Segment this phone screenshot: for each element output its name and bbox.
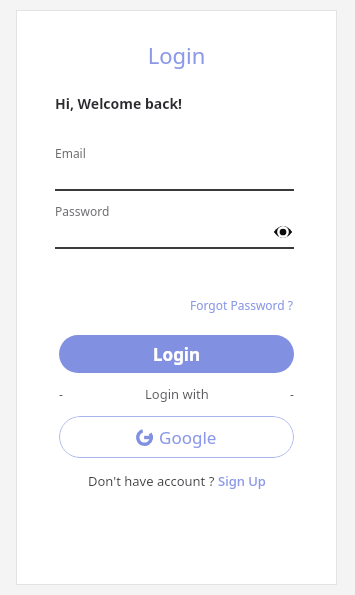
- button[interactable]: Forgot Password ?: [190, 297, 294, 313]
- staticText: Google: [159, 426, 217, 449]
- button[interactable]: Sign Up: [218, 472, 266, 490]
- staticText: -: [59, 386, 63, 402]
- staticText: Password: [55, 203, 110, 219]
- button[interactable]: Google: [59, 416, 294, 458]
- button[interactable]: Login: [59, 335, 294, 373]
- staticText: Email: [55, 145, 86, 161]
- button[interactable]: Show password: [272, 221, 294, 243]
- staticText: Login with: [145, 385, 209, 403]
- staticText: Login: [153, 343, 201, 366]
- button[interactable]: [55, 161, 294, 191]
- staticText: Login: [16, 40, 337, 70]
- staticText: Don't have account ?: [88, 472, 218, 490]
- staticText: Hi, Welcome back!: [55, 94, 183, 113]
- staticText: -: [290, 386, 294, 402]
